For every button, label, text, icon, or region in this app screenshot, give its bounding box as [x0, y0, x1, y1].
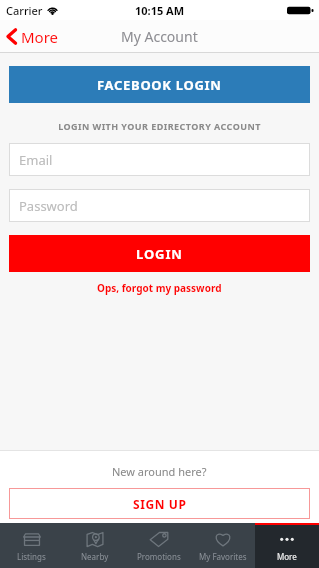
- button[interactable]: Promotions: [127, 523, 191, 568]
- staticText: New around here?: [112, 464, 207, 479]
- staticText: My Favorites: [199, 551, 247, 562]
- button[interactable]: More: [255, 523, 319, 568]
- staticText: More: [277, 551, 297, 562]
- button[interactable]: FACEBOOK LOGIN: [9, 66, 310, 103]
- staticText: More: [21, 27, 59, 47]
- staticText: SIGN UP: [133, 496, 187, 512]
- button[interactable]: SIGN UP: [9, 488, 310, 519]
- staticText: Email: [19, 151, 53, 169]
- button[interactable]: Nearby: [63, 523, 127, 568]
- staticText: Listings: [17, 551, 46, 562]
- staticText: LOGIN WITH YOUR EDIRECTORY ACCOUNT: [0, 120, 319, 132]
- button[interactable]: Password: [9, 189, 310, 222]
- staticText: Promotions: [137, 551, 181, 562]
- staticText: 10:15 AM: [135, 3, 185, 18]
- staticText: Nearby: [81, 551, 109, 562]
- staticText: Carrier: [6, 3, 43, 18]
- staticText: FACEBOOK LOGIN: [97, 76, 222, 94]
- button[interactable]: More: [6, 20, 59, 53]
- button[interactable]: Listings: [0, 523, 63, 568]
- staticText: LOGIN: [136, 245, 183, 263]
- button[interactable]: LOGIN: [9, 235, 310, 272]
- button[interactable]: My Favorites: [191, 523, 255, 568]
- staticText: Password: [19, 197, 78, 215]
- button[interactable]: Email: [9, 143, 310, 176]
- staticText: My Account: [121, 27, 198, 46]
- button[interactable]: Ops, forgot my password: [0, 272, 319, 304]
- staticText: Ops, forgot my password: [97, 281, 222, 295]
